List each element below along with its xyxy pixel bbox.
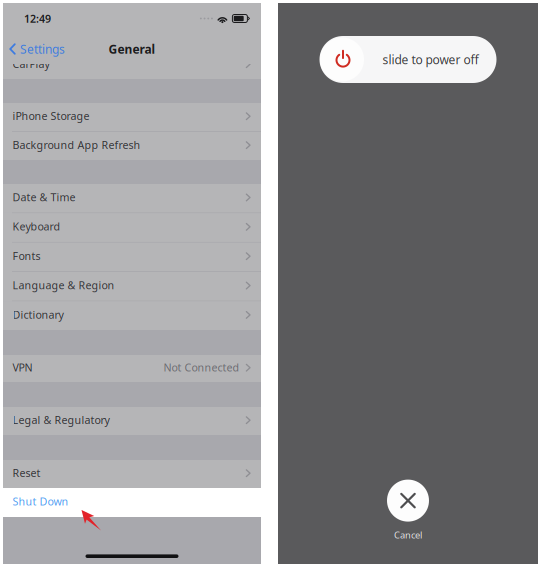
- button[interactable]: Date & Time: [3, 184, 261, 213]
- staticText: slide to power off: [382, 51, 478, 67]
- staticText: Cancel: [394, 529, 422, 541]
- staticText: Date & Time: [12, 190, 75, 204]
- button[interactable]: Shut Down: [3, 488, 261, 517]
- staticText: Dictionary: [12, 307, 63, 322]
- button[interactable]: Language & Region: [3, 272, 261, 301]
- staticText: CarPlay: [12, 57, 49, 71]
- staticText: Keyboard: [12, 219, 60, 234]
- button[interactable]: slide to power off: [319, 36, 496, 83]
- button[interactable]: Keyboard: [3, 213, 261, 242]
- staticText: Reset: [12, 466, 40, 480]
- staticText: Shut Down: [12, 494, 68, 508]
- staticText: 12:49: [24, 11, 51, 26]
- button[interactable]: Legal & Regulatory: [3, 407, 261, 435]
- staticText: iPhone Storage: [12, 109, 89, 123]
- staticText: Background App Refresh: [12, 138, 140, 152]
- staticText: General: [108, 41, 155, 57]
- staticText: Fonts: [12, 249, 40, 263]
- button[interactable]: Background App Refresh: [3, 132, 261, 160]
- staticText: Settings: [20, 41, 65, 57]
- button[interactable]: Dictionary: [3, 301, 261, 330]
- staticText: Language & Region: [12, 278, 114, 292]
- staticText: Legal & Regulatory: [12, 413, 109, 427]
- button[interactable]: iPhone Storage: [3, 103, 261, 131]
- button[interactable]: VPN: [3, 355, 261, 382]
- button[interactable]: Fonts: [3, 243, 261, 271]
- staticText: VPN: [12, 360, 32, 374]
- button[interactable]: Cancel: [387, 480, 429, 541]
- button[interactable]: Settings: [3, 39, 65, 59]
- staticText: Not Connected: [163, 360, 239, 374]
- button[interactable]: Reset: [3, 460, 261, 488]
